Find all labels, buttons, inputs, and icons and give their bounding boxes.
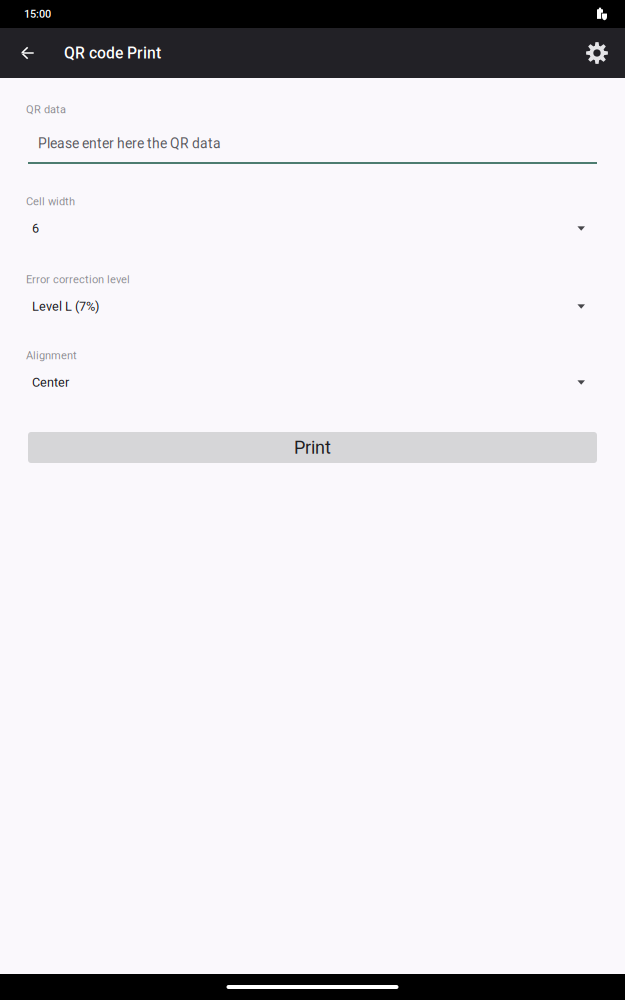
button[interactable]: Print — [26, 432, 597, 463]
staticText: Error correction level — [26, 273, 130, 286]
staticText: Level L (7%) — [32, 299, 99, 314]
staticText: QR data — [26, 103, 66, 116]
button[interactable]: Cell width — [26, 196, 597, 235]
button[interactable]: QR data — [26, 104, 597, 164]
staticText: Cell width — [26, 195, 75, 208]
button[interactable]: Back — [5, 28, 49, 78]
button[interactable]: Error correction level — [26, 274, 597, 313]
staticText: Print — [294, 437, 331, 458]
staticText: Please enter here the QR data — [38, 135, 221, 152]
staticText: Alignment — [26, 349, 77, 362]
button[interactable]: Alignment — [26, 350, 597, 389]
staticText: Center — [32, 375, 69, 390]
staticText: 6 — [32, 221, 39, 236]
button[interactable]: Settings — [572, 28, 622, 78]
staticText: QR code Print — [64, 44, 161, 62]
staticText: 15:00 — [24, 8, 51, 20]
